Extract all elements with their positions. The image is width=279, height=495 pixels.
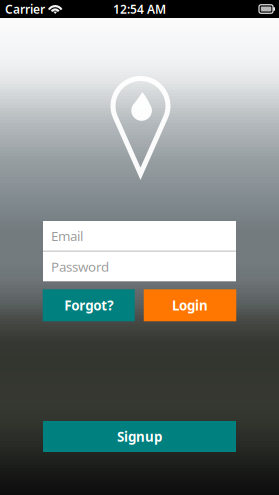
staticText: Login [172, 296, 208, 314]
staticText: Password [51, 258, 109, 275]
staticText: Carrier [5, 1, 45, 17]
staticText: 12:54 AM [113, 1, 166, 17]
staticText: Signup [117, 428, 162, 445]
button[interactable]: Signup [43, 421, 236, 452]
button[interactable]: Forgot? [43, 289, 135, 321]
button[interactable]: Login [144, 289, 236, 321]
staticText: Email [51, 227, 83, 245]
staticText: Forgot? [64, 296, 113, 314]
